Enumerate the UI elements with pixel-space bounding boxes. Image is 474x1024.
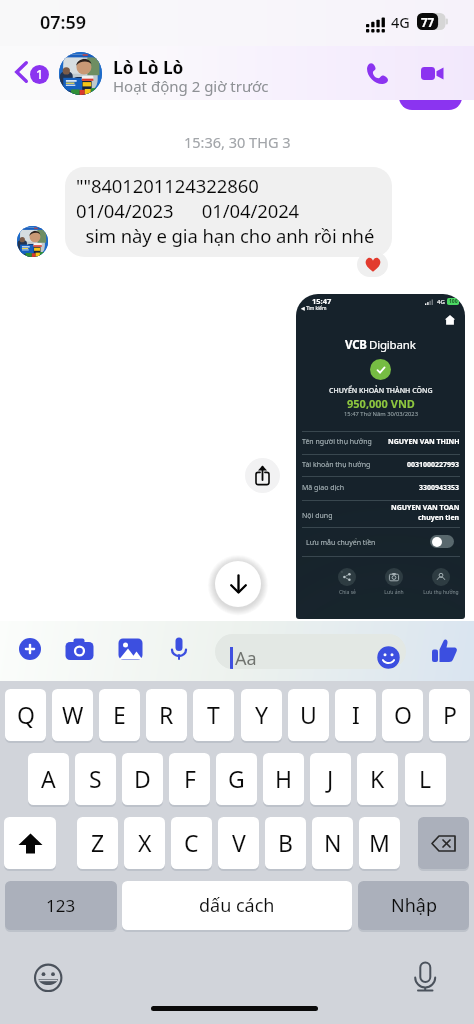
staticText: 15:36, 30 THG 3 [184,132,291,152]
staticText: Tài khoản thụ hưởng [302,460,371,470]
button[interactable]: L [405,753,446,805]
button[interactable]: Add [14,633,46,665]
button[interactable]: Dictation [413,961,437,992]
button[interactable]: Gallery [114,633,146,665]
staticText: Q [17,699,35,730]
staticText: dấu cách [199,893,275,918]
staticText: G [228,763,245,794]
staticText: chuyen tien [418,513,460,523]
button[interactable]: Emoji keyboard [33,962,64,993]
staticText: Lưu thụ hưởng [423,589,459,596]
staticText: Lò Lò Lò [113,56,184,80]
staticText: F [184,763,196,794]
button[interactable]: Y [241,689,282,741]
staticText: 3300943353 [419,483,460,493]
staticText: U [300,699,317,730]
other: Shift [18,833,43,854]
staticText: 15:47 [312,296,332,306]
staticText: N [324,827,342,858]
staticText: 07:59 [40,10,87,35]
staticText: S [89,763,102,794]
button[interactable]: Back [12,55,52,91]
button[interactable]: Voice message [163,633,195,665]
button[interactable]: U [288,689,329,741]
staticText: Digibank [369,337,416,353]
staticText: 4G [437,298,445,306]
button[interactable]: Camera [63,633,95,665]
staticText: 0031000227993 [407,460,460,470]
staticText: 100 [449,298,458,305]
button[interactable]: T [193,689,234,741]
staticText: H [275,763,293,794]
staticText: Tên người thụ hưởng [302,437,372,447]
button[interactable]: B [265,817,306,869]
button[interactable]: Backspace [418,817,469,869]
button[interactable]: Call [355,51,399,95]
staticText: ◀ Tìm kiếm [301,305,327,312]
button[interactable]: dấu cách [122,881,352,930]
button[interactable]: Z [77,817,118,869]
button[interactable]: A [28,753,69,805]
staticText: Chia sẻ [339,589,356,596]
button[interactable]: V [218,817,259,869]
button[interactable]: Video call [410,51,454,95]
button[interactable]: P [429,689,470,741]
button[interactable]: Shift [4,817,56,869]
staticText: I [352,699,360,730]
staticText: Mã giao dịch [302,483,344,493]
button[interactable]: R [146,689,187,741]
staticText: V [232,827,246,858]
button[interactable]: Lưu ảnh [371,568,417,596]
button[interactable]: Lưu thụ hưởng [418,568,464,596]
button[interactable]: J [310,753,351,805]
staticText: 1 [36,66,44,83]
staticText: 15:47 Thứ Năm 30/03/2023 [344,410,418,418]
staticText: Nhập [391,893,437,918]
button[interactable]: K [357,753,398,805]
button[interactable]: F [169,753,210,805]
button[interactable]: Aa [215,634,406,669]
button[interactable]: Nhập [358,881,469,930]
button[interactable]: D [122,753,163,805]
staticText: Hoạt động 2 giờ trước [113,76,269,96]
button[interactable]: N [312,817,353,869]
button[interactable]: O [382,689,423,741]
staticText: NGUYEN VAN THINH [388,437,460,447]
button[interactable]: Emoji [377,646,400,669]
button[interactable]: Chia sẻ [324,568,370,596]
button[interactable]: Q [5,689,46,741]
staticText: sim này e gia hạn cho anh rồi nhé [76,223,375,248]
button[interactable]: W [52,689,93,741]
staticText: 77 [421,15,435,31]
button[interactable]: 123 [5,881,117,930]
button[interactable]: E [99,689,140,741]
staticText: M [369,827,390,858]
button[interactable]: ""8401201124322860 [65,167,392,257]
staticText: Z [91,827,105,858]
staticText: E [113,699,126,730]
button[interactable]: Like [427,633,463,669]
button[interactable]: H [263,753,304,805]
button[interactable]: X [124,817,165,869]
staticText: O [394,699,412,730]
button[interactable]: C [171,817,212,869]
staticText: ""8401201124322860 [76,173,259,198]
button[interactable]: Share [245,458,280,493]
staticText: W [62,699,84,730]
staticText: A [41,763,56,794]
button[interactable]: Save transfer template [430,535,454,548]
button[interactable]: S [75,753,116,805]
staticText: NGUYEN VAN TOAN [391,503,460,513]
staticText: T [207,699,220,730]
button[interactable]: M [359,817,400,869]
staticText: P [443,699,457,730]
button[interactable]: Love reaction [357,252,388,277]
staticText: 01/04/2023 01/04/2024 [76,198,300,223]
button[interactable]: Scroll to bottom [215,561,261,607]
staticText: CHUYỂN KHOẢN THÀNH CÔNG [329,386,433,396]
button[interactable]: I [335,689,376,741]
staticText: Lưu ảnh [384,589,404,596]
button[interactable]: 15:47 [296,294,465,619]
button[interactable]: G [216,753,257,805]
staticText: B [278,827,293,858]
